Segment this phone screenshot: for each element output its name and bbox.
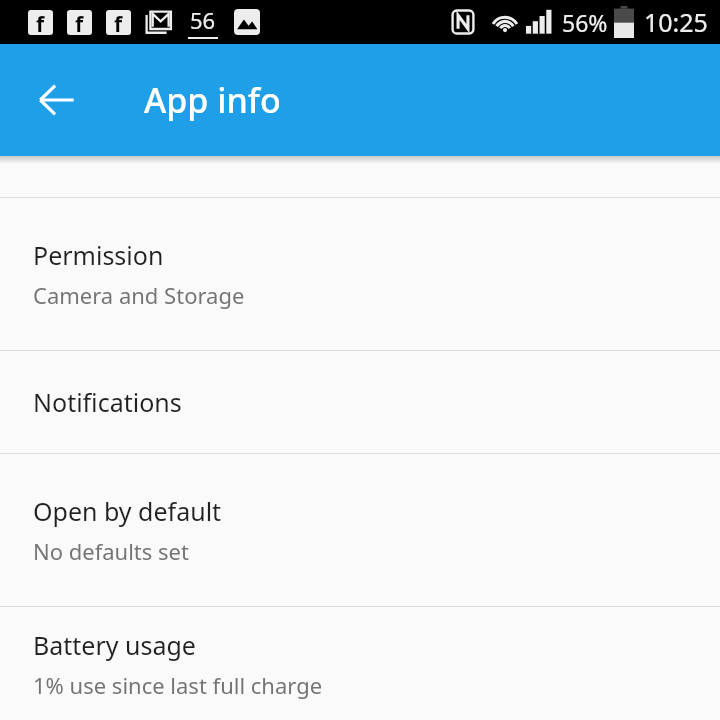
staticText: Open by default [33, 494, 222, 528]
staticText: Camera and Storage [33, 280, 245, 310]
button[interactable]: Permission [0, 198, 720, 350]
staticText: f [36, 10, 45, 35]
button[interactable]: Open by default [0, 454, 720, 606]
staticText: Notifications [33, 385, 182, 419]
staticText: Battery usage [33, 628, 196, 662]
staticText: 1% use since last full charge [33, 670, 323, 700]
button[interactable]: Battery usage [0, 607, 720, 720]
staticText: App info [144, 77, 281, 123]
staticText: 56 [190, 5, 216, 35]
button[interactable]: Notifications [0, 351, 720, 453]
staticText: Permission [33, 238, 164, 272]
staticText: f [114, 10, 123, 35]
staticText: f [75, 10, 84, 35]
staticText: 10:25 [644, 5, 708, 39]
staticText: No defaults set [33, 536, 189, 566]
button[interactable]: Back [24, 67, 90, 133]
staticText: 56% [562, 7, 608, 38]
